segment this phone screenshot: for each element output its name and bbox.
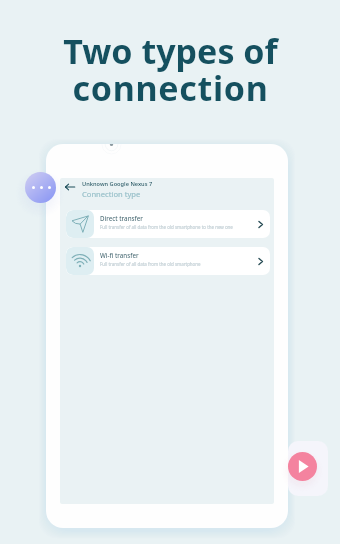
staticText: Unknown Google Nexus 7 — [82, 180, 153, 188]
staticText: Full transfer of all data from the old s… — [100, 261, 201, 267]
button[interactable]: Direct transfer — [66, 210, 270, 238]
button[interactable]: Messages — [25, 172, 56, 203]
staticText: Full transfer of all data from the old s… — [100, 224, 233, 230]
staticText: Wi-fi transfer — [100, 251, 139, 259]
button[interactable]: Back — [62, 179, 78, 195]
button[interactable]: Wi-fi transfer — [66, 247, 270, 275]
staticText: connection — [72, 65, 269, 111]
staticText: Two types of — [63, 28, 278, 74]
staticText: Connection type — [82, 189, 141, 199]
staticText: Direct transfer — [100, 214, 143, 222]
button[interactable]: Play — [288, 452, 317, 481]
